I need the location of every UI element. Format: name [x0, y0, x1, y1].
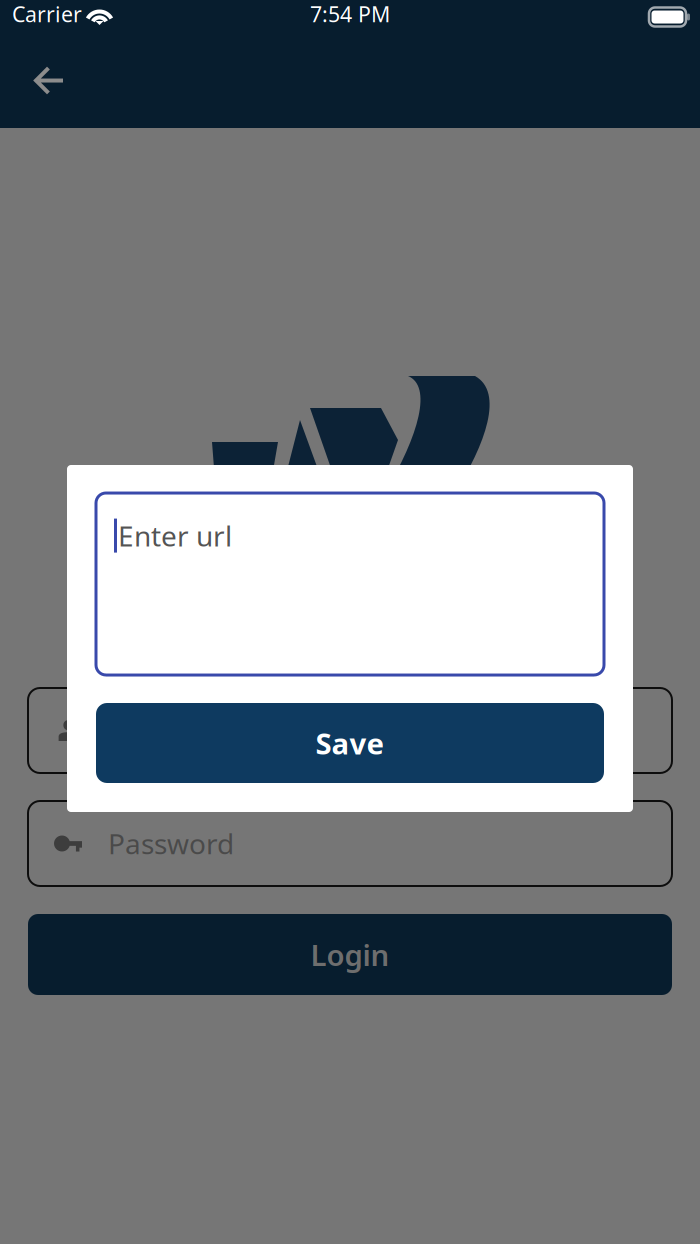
staticText: 7:54 PM — [310, 0, 390, 28]
staticText: Carrier — [12, 0, 82, 28]
button[interactable]: Back — [19, 50, 80, 111]
staticText: Save — [315, 723, 384, 762]
button[interactable]: Username — [28, 688, 672, 773]
staticText: Enter url — [118, 517, 232, 554]
staticText: Login — [310, 935, 389, 974]
button[interactable]: Save — [96, 703, 604, 783]
staticText: Password — [108, 825, 234, 862]
button[interactable]: Login — [28, 914, 672, 995]
button[interactable]: Password — [28, 801, 672, 886]
